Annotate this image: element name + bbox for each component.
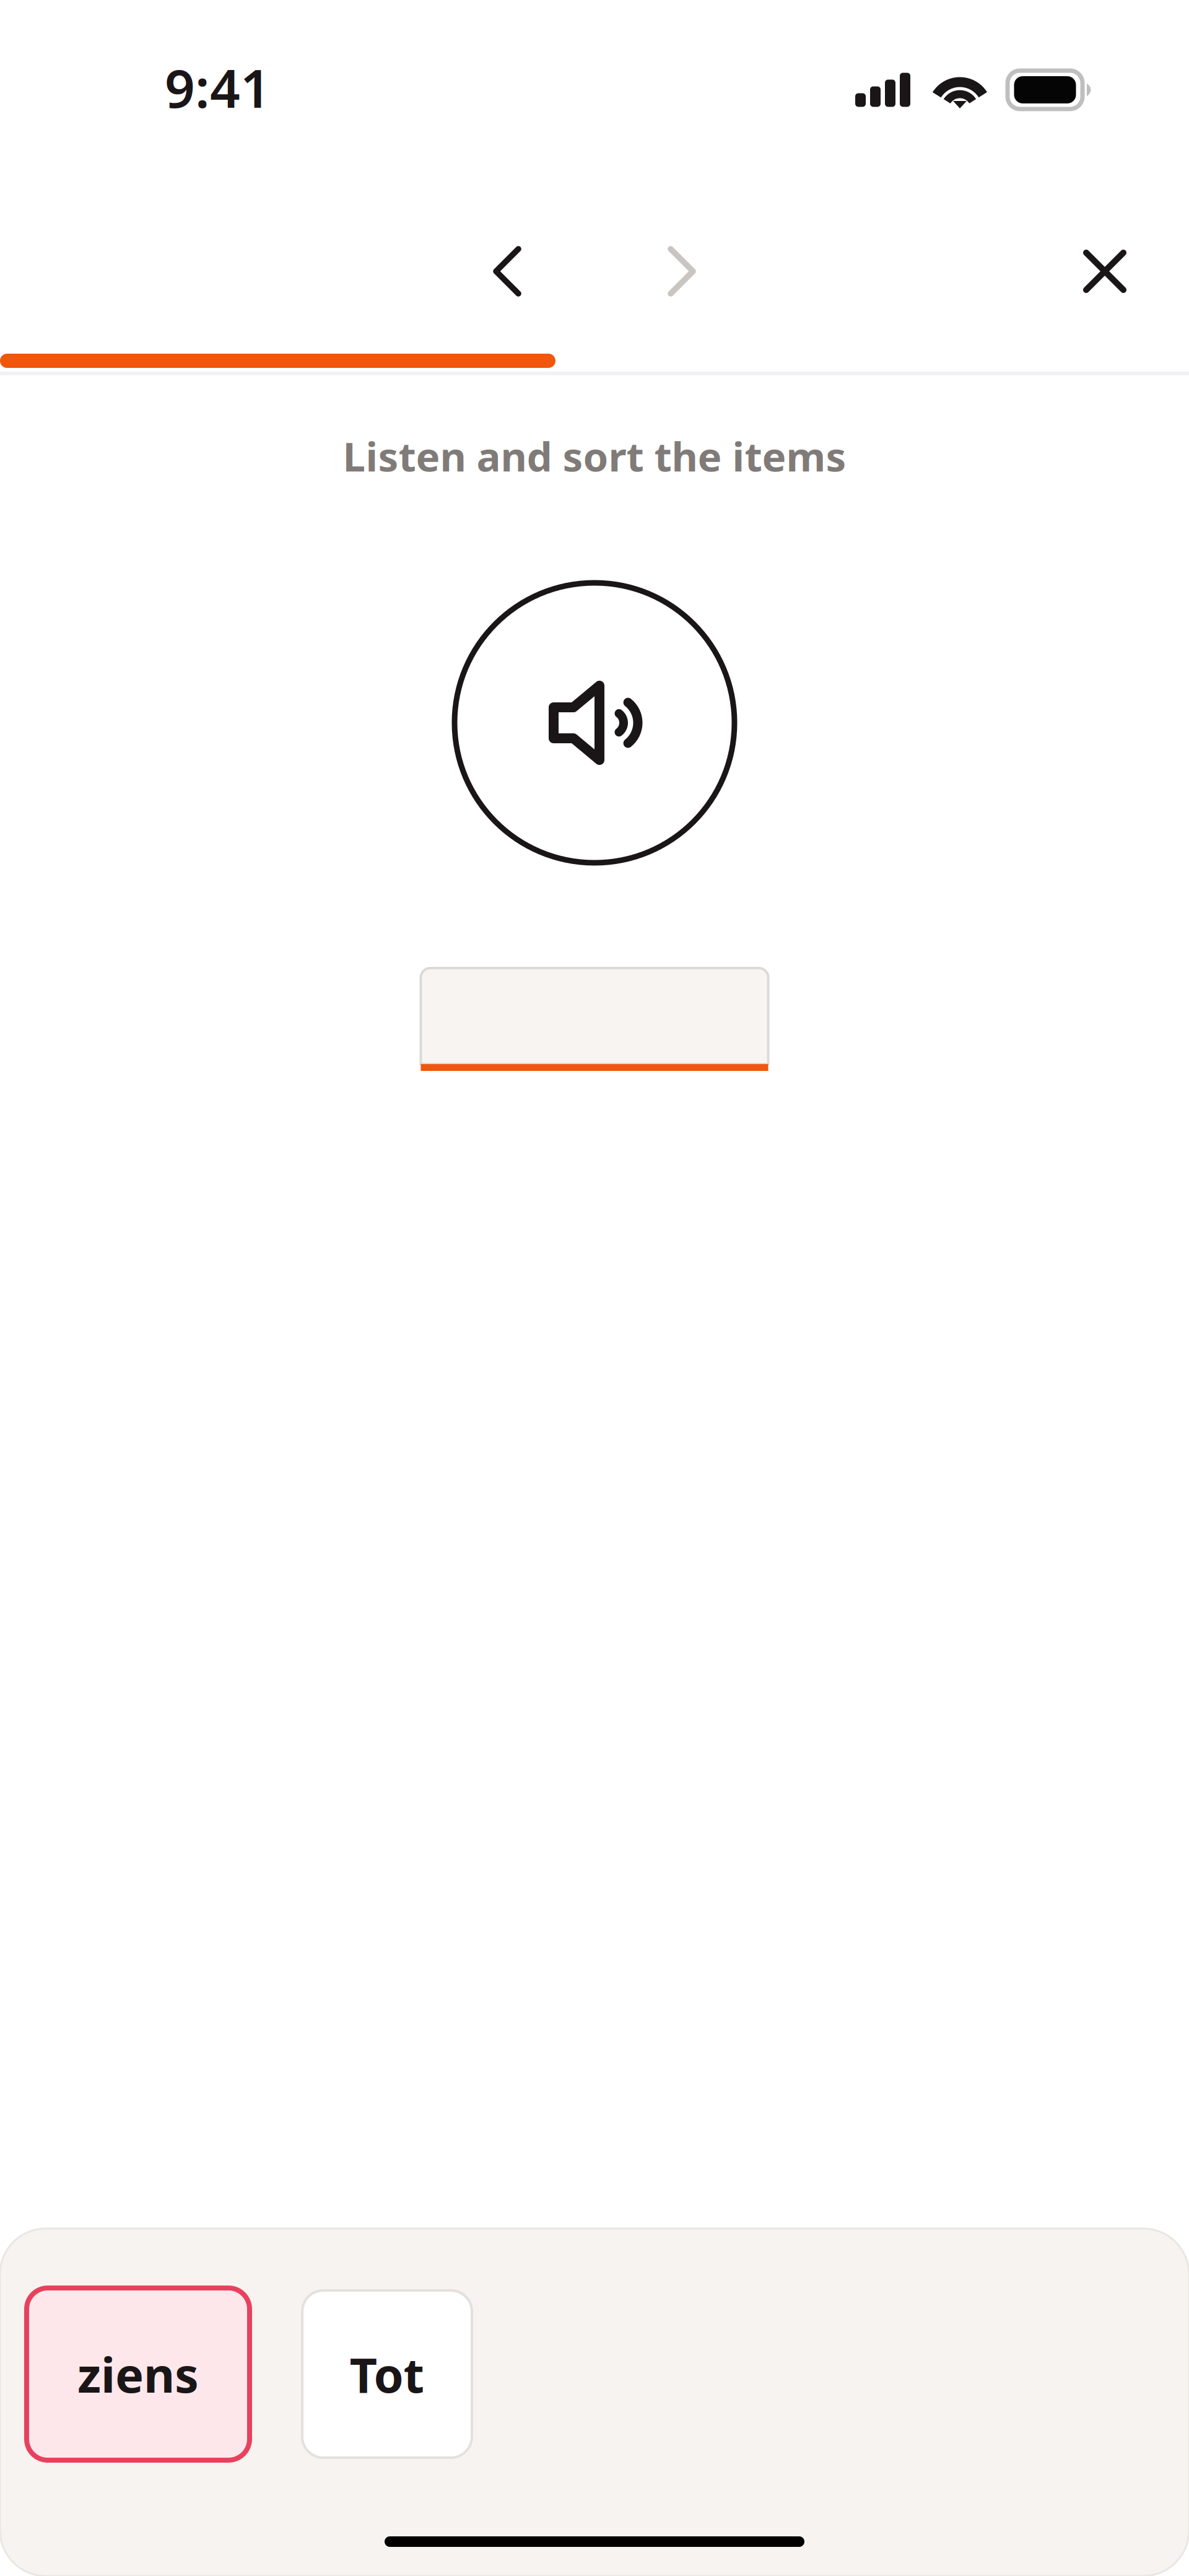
staticText: ziens bbox=[77, 2342, 199, 2406]
button[interactable]: ziens bbox=[27, 2288, 250, 2460]
button[interactable]: Previous bbox=[464, 237, 551, 306]
staticText: Listen and sort the items bbox=[343, 429, 846, 483]
staticText: 9:41 bbox=[165, 52, 271, 122]
staticText: Tot bbox=[350, 2342, 425, 2406]
button[interactable]: Next bbox=[638, 237, 725, 306]
button[interactable]: Close bbox=[1061, 237, 1148, 306]
button[interactable]: Play audio bbox=[453, 581, 736, 865]
button[interactable]: Tot bbox=[302, 2290, 472, 2458]
